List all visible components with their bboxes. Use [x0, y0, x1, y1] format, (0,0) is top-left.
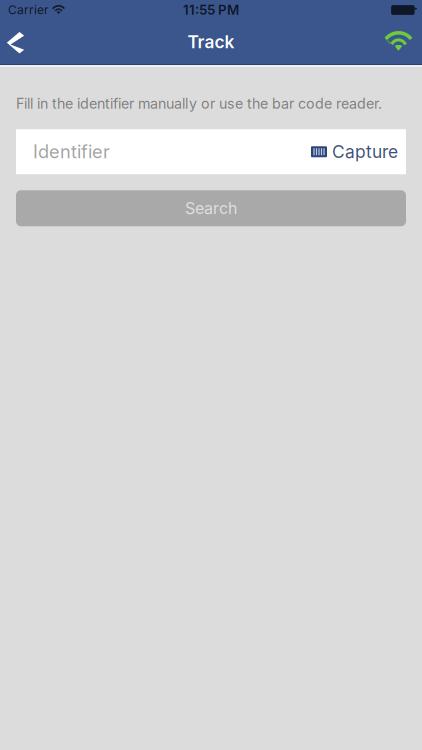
- staticText: Identifier: [33, 141, 110, 163]
- staticText: Capture: [332, 141, 398, 162]
- staticText: Carrier: [8, 3, 49, 17]
- staticText: 11:55 PM: [183, 2, 239, 18]
- staticText: Search: [185, 199, 237, 218]
- staticText: Fill in the identifier manually or use t…: [16, 95, 382, 112]
- button[interactable]: Connection status: [384, 20, 422, 64]
- staticText: Track: [187, 31, 234, 52]
- button[interactable]: Capture: [311, 129, 406, 174]
- button[interactable]: Search: [16, 190, 406, 226]
- button[interactable]: Back: [0, 20, 39, 64]
